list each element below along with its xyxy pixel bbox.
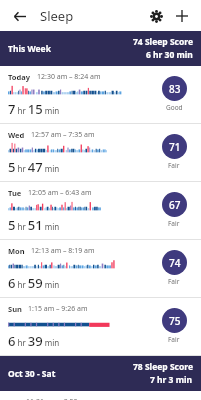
staticText: Fair [168,335,180,344]
staticText: 5 hr 51 min [8,216,60,234]
staticText: 7 hr 3 min [150,374,193,386]
staticText: 6 hr 59 min [8,274,60,292]
staticText: 6 hr 39 min [8,332,60,350]
button[interactable]: Oct 30 - Sat [0,356,201,391]
staticText: Mon [8,246,25,256]
staticText: 78 Sleep Score [133,361,193,373]
button[interactable]: Tue [0,182,201,240]
staticText: Fair [168,219,180,228]
button[interactable]: Settings [145,5,167,27]
staticText: 71 [169,140,181,154]
staticText: 12:57 am – 7:35 am [31,130,95,140]
button[interactable]: Mon [0,240,201,298]
staticText: 11:31 pm – 8:50 am [26,397,90,400]
button[interactable]: Add [171,5,193,27]
staticText: 75 [169,314,181,328]
staticText: Oct 30 - Sat [8,368,56,380]
staticText: 1:15 am – 9:26 am [28,304,88,314]
staticText: 12:05 am – 6:43 am [28,188,92,198]
staticText: Tue [8,188,22,198]
button[interactable]: Sun [0,298,201,356]
staticText: Wed [8,130,25,140]
button[interactable]: Back [8,5,30,27]
staticText: This Week [8,43,51,55]
staticText: Fair [168,277,180,286]
button[interactable]: Wed [0,124,201,182]
staticText: 6 hr 30 min [146,49,193,61]
button[interactable]: This Week [0,31,201,66]
staticText: Good [166,103,183,112]
staticText: Fair [168,161,180,170]
staticText: 12:13 am – 8:19 am [31,246,95,256]
button[interactable]: Sat [0,391,201,400]
staticText: 74 Sleep Score [133,36,193,48]
staticText: 67 [169,198,181,212]
staticText: Sun [8,304,22,314]
staticText: Today [8,72,31,82]
staticText: 7 hr 15 min [8,100,60,118]
button[interactable]: Today [0,66,201,124]
staticText: 74 [169,256,181,270]
staticText: 12:30 am – 8:24 am [37,72,101,82]
staticText: 5 hr 47 min [8,158,60,176]
staticText: 83 [169,82,181,96]
staticText: Sleep [40,7,74,25]
